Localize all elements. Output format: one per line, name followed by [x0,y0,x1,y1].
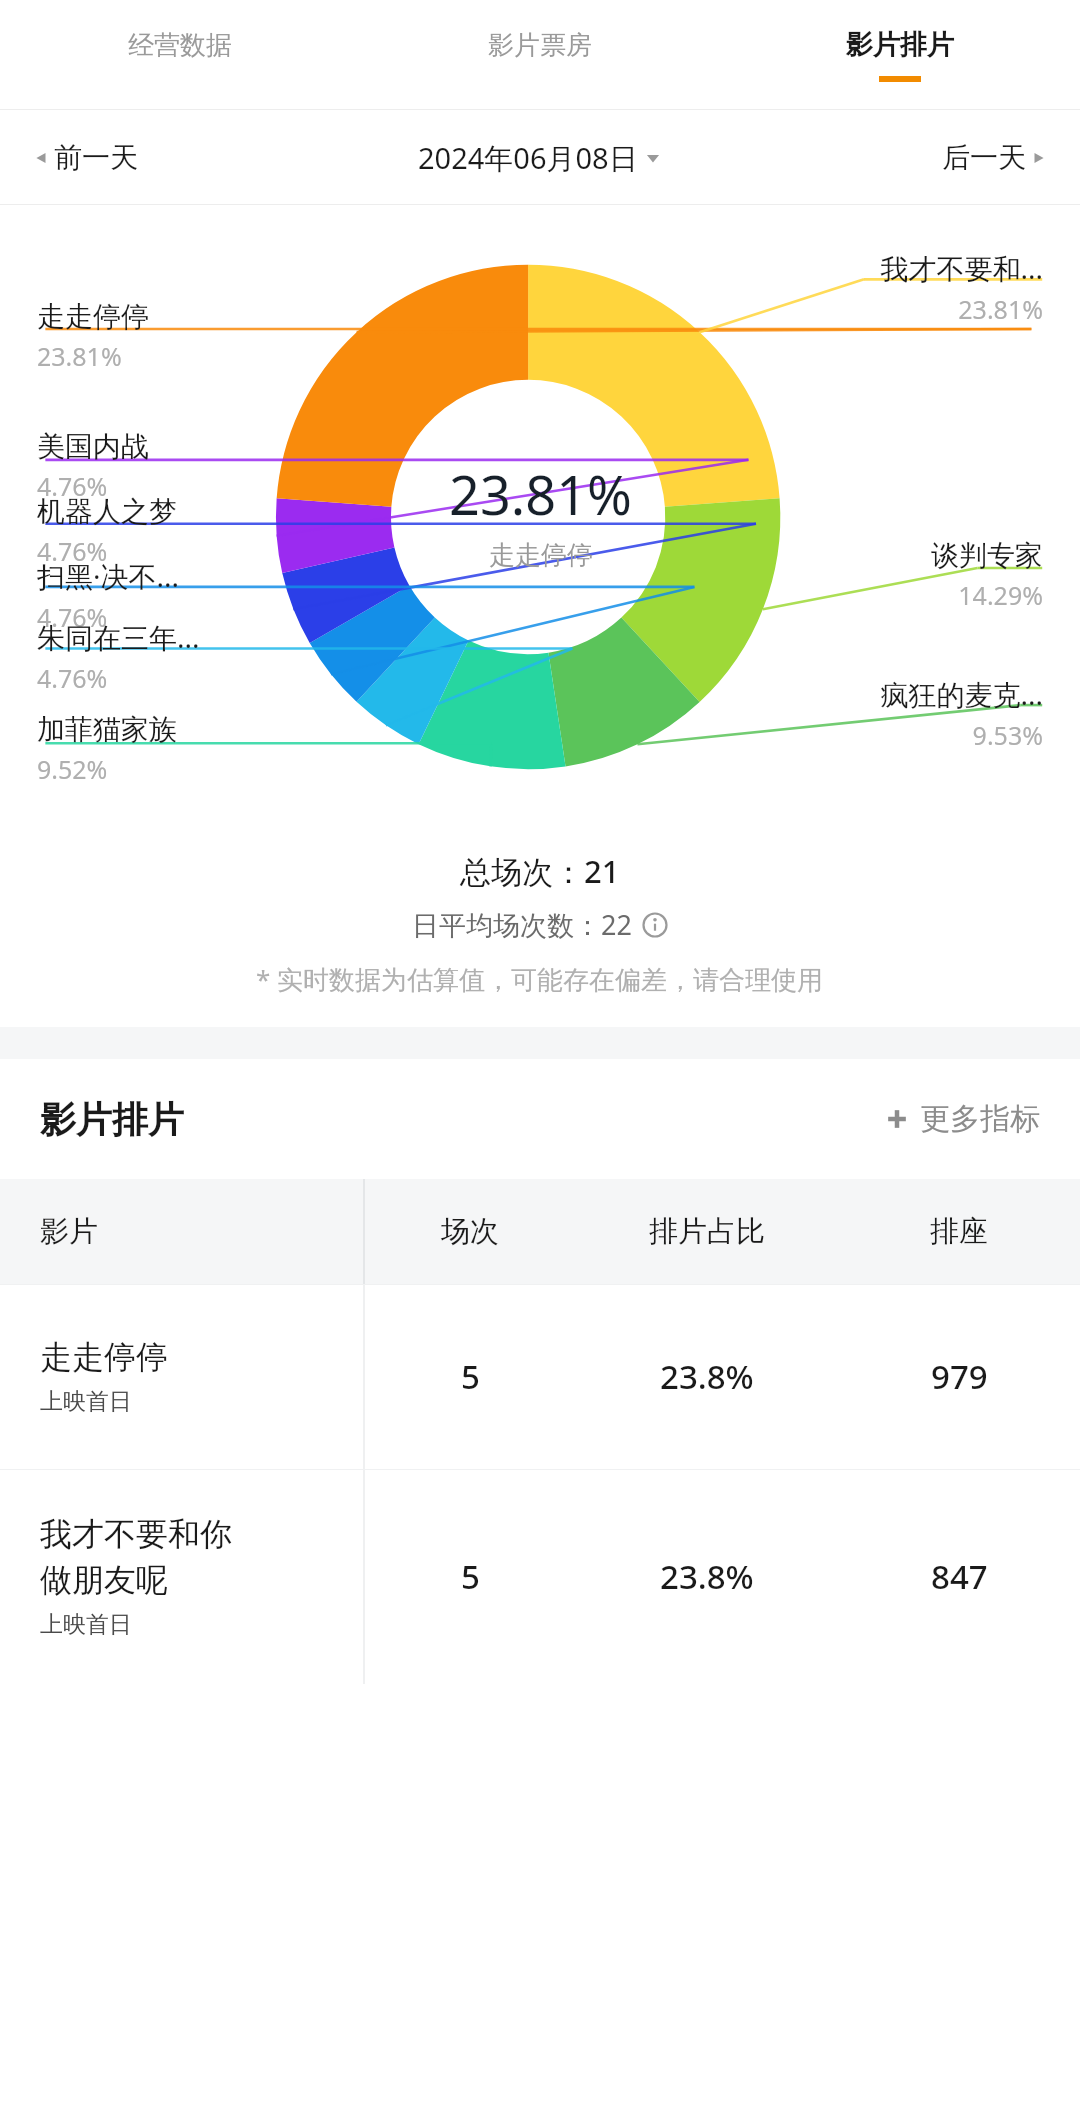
staticText: 影片票房 [488,29,592,62]
staticText: 我才不要和... [880,249,1043,287]
staticText: 上映首日 [40,1387,132,1416]
staticText: 美国内战 [37,429,149,464]
staticText: 谈判专家 [931,538,1043,573]
button[interactable]: 经营数据 [0,0,360,110]
staticText: 上映首日 [40,1610,132,1639]
staticText: 23.8% [660,1354,754,1399]
staticText: 影片排片 [846,28,954,62]
staticText: 前一天 [54,140,138,175]
staticText: 走走停停 [40,1337,168,1377]
staticText: 走走停停 [37,299,149,334]
staticText: 更多指标 [920,1100,1040,1138]
button[interactable]: 后一天 [942,132,1046,183]
staticText: 走走停停 [489,539,593,572]
staticText: 5 [461,1354,480,1399]
staticText: 总场次：21 [460,850,620,892]
staticText: 5 [461,1554,480,1599]
button[interactable]: 影片排片 [720,0,1080,110]
staticText: 4.76% [37,600,108,634]
staticText: 23.81% [958,292,1043,326]
staticText: 979 [931,1354,988,1399]
button[interactable]: 更多指标 [884,1090,1040,1148]
staticText: 9.52% [37,752,108,786]
staticText: 经营数据 [128,29,232,62]
staticText: 扫黑·决不... [37,557,180,595]
staticText: 2024年06月08日 [418,138,638,178]
staticText: 我才不要和你 [40,1514,232,1554]
staticText: 影片排片 [40,1097,184,1142]
button[interactable]: 前一天 [34,132,138,183]
staticText: 14.29% [958,578,1043,612]
staticText: 4.76% [37,469,108,503]
staticText: 9.53% [972,718,1043,752]
staticText: 847 [931,1554,988,1599]
staticText: * 实时数据为估算值，可能存在偏差，请合理使用 [256,961,824,997]
staticText: 排座 [930,1213,988,1250]
button[interactable]: 说明 [642,912,668,938]
staticText: 排片占比 [649,1213,765,1250]
staticText: 23.81% [37,339,122,373]
staticText: 场次 [441,1213,499,1250]
staticText: 23.81% [449,457,632,531]
staticText: 4.76% [37,661,108,695]
staticText: 后一天 [942,140,1026,175]
staticText: 疯狂的麦克... [880,675,1043,713]
staticText: 23.8% [660,1554,754,1599]
button[interactable]: 2024年06月08日 [418,130,661,186]
staticText: 做朋友呢 [40,1560,168,1600]
staticText: 日平均场次数：22 [412,906,632,943]
staticText: 加菲猫家族 [37,712,177,747]
staticText: 4.76% [37,534,108,568]
staticText: 朱同在三年... [37,618,200,656]
staticText: 机器人之梦 [37,494,177,529]
staticText: 影片 [40,1213,98,1250]
button[interactable]: 影片票房 [360,0,720,110]
button[interactable]: 我才不要和你 [0,1469,1080,1684]
button[interactable]: 走走停停 [0,1284,1080,1469]
